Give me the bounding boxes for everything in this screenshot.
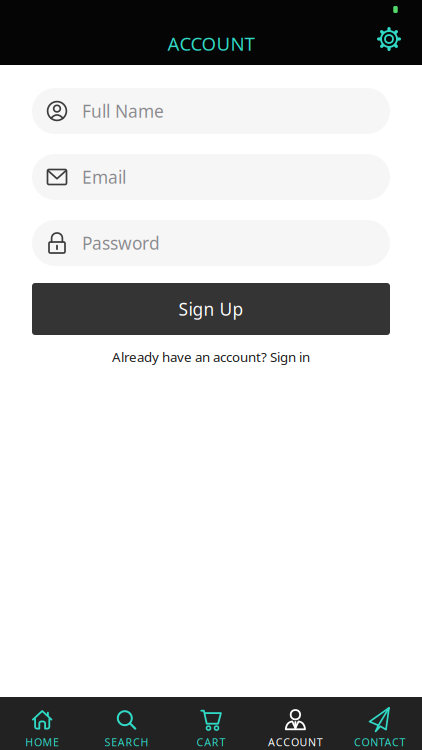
button[interactable]: HOME [0, 697, 84, 750]
button[interactable]: CART [169, 697, 253, 750]
button[interactable]: CONTACT [338, 697, 422, 750]
staticText: SEARCH [105, 735, 149, 749]
staticText: Already have an account? Sign in [112, 348, 310, 366]
staticText: ACCOUNT [167, 31, 254, 56]
staticText: CONTACT [354, 735, 406, 749]
button[interactable]: SEARCH [84, 697, 169, 750]
button[interactable]: Password [32, 220, 390, 266]
button[interactable]: Email [32, 154, 390, 200]
staticText: Full Name [82, 99, 164, 122]
button[interactable]: Sign Up [32, 283, 390, 335]
button[interactable] [376, 26, 402, 52]
button[interactable]: Already have an account? Sign in [112, 348, 310, 366]
staticText: CART [197, 735, 225, 749]
button[interactable]: Full Name [32, 88, 390, 134]
staticText: Sign Up [178, 297, 243, 320]
staticText: Password [82, 231, 160, 254]
staticText: HOME [25, 735, 59, 749]
staticText: ACCOUNT [268, 735, 323, 749]
button[interactable]: ACCOUNT [253, 697, 338, 750]
staticText: Email [82, 165, 126, 188]
